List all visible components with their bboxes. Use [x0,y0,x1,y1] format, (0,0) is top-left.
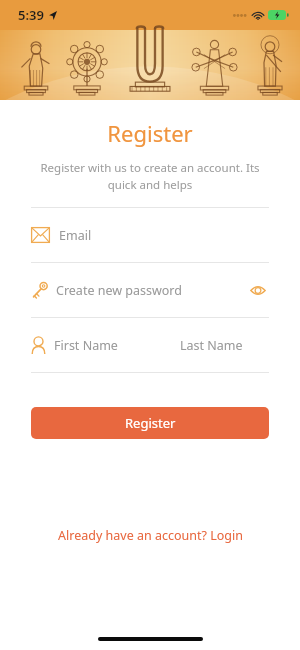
staticText: 5:39 [18,6,44,24]
staticText: Create new password [56,282,182,299]
staticText: Register [125,414,176,432]
button[interactable]: Already have an account? Login [0,527,300,544]
staticText: Email [59,227,92,244]
staticText: Already have an account? Login [58,527,243,544]
button[interactable]: Email [0,208,300,262]
staticText: Register [0,118,300,148]
button[interactable]: Register [31,407,269,439]
staticText: Last Name [180,337,243,354]
button[interactable]: First Name [0,318,300,372]
staticText: Register with us to create an account. I… [31,160,269,192]
staticText: First Name [54,337,118,354]
button[interactable]: Create new password [0,263,300,317]
button[interactable]: Show password [247,279,269,301]
